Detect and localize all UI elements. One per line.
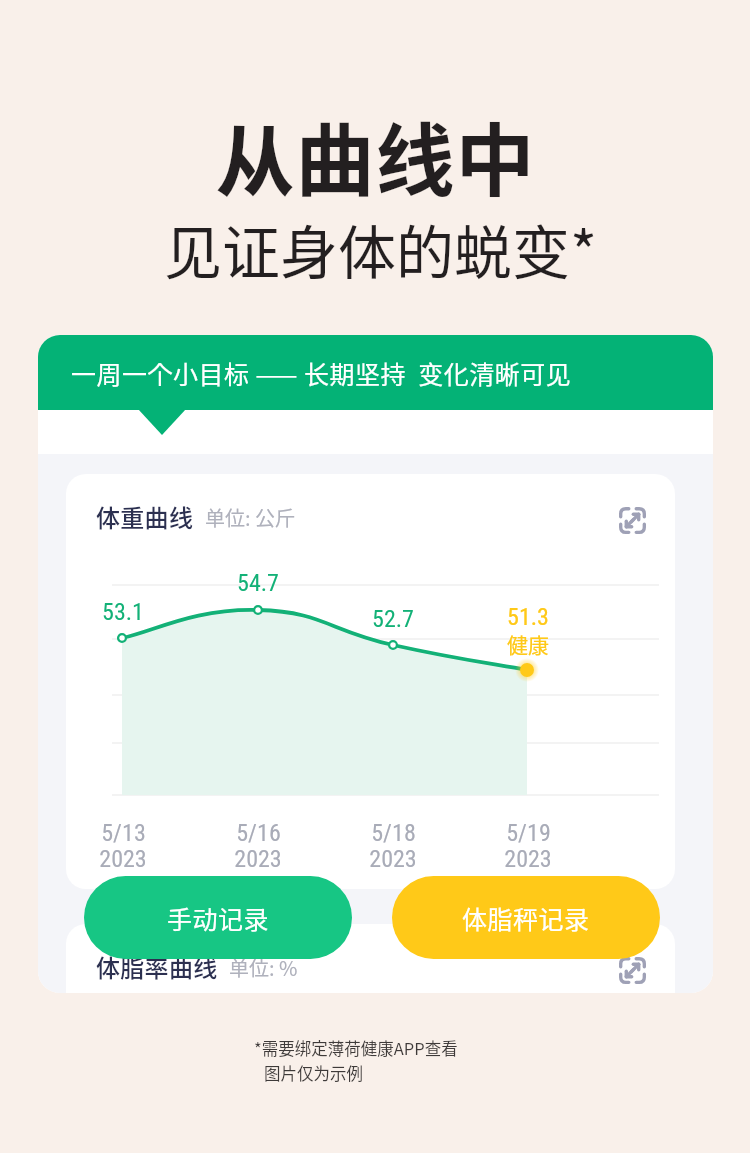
- button[interactable]: Fullscreen: [606, 944, 658, 993]
- staticText: 5/18: [371, 819, 416, 847]
- staticText: 健康: [507, 629, 549, 659]
- staticText: 体脂秤记录: [462, 900, 590, 936]
- staticText: 见证身体的蜕变*: [164, 207, 598, 291]
- staticText: 体脂率曲线: [96, 949, 218, 984]
- staticText: 体重曲线: [96, 499, 194, 534]
- staticText: 5/13: [101, 819, 146, 847]
- staticText: 单位: %: [229, 953, 298, 982]
- staticText: 2023: [504, 845, 552, 873]
- staticText: 单位: 公斤: [205, 503, 296, 532]
- staticText: 2023: [99, 845, 147, 873]
- staticText: 5/19: [506, 819, 551, 847]
- staticText: 2023: [234, 845, 282, 873]
- staticText: 一周一个小目标 —— 长期坚持 变化清晰可见: [71, 355, 572, 391]
- staticText: 手动记录: [167, 900, 270, 936]
- staticText: *需要绑定薄荷健康APP查看: [254, 1036, 458, 1060]
- staticText: 51.3: [507, 603, 549, 631]
- staticText: 图片仅为示例: [264, 1061, 363, 1085]
- staticText: 5/16: [236, 819, 281, 847]
- staticText: 从曲线中: [215, 98, 535, 212]
- staticText: 2023: [369, 845, 417, 873]
- button[interactable]: 体脂秤记录: [392, 876, 660, 959]
- button[interactable]: Fullscreen: [606, 494, 658, 546]
- staticText: 52.7: [372, 605, 414, 633]
- staticText: 54.7: [237, 569, 279, 597]
- staticText: 53.1: [102, 598, 144, 626]
- button[interactable]: 手动记录: [84, 876, 352, 959]
